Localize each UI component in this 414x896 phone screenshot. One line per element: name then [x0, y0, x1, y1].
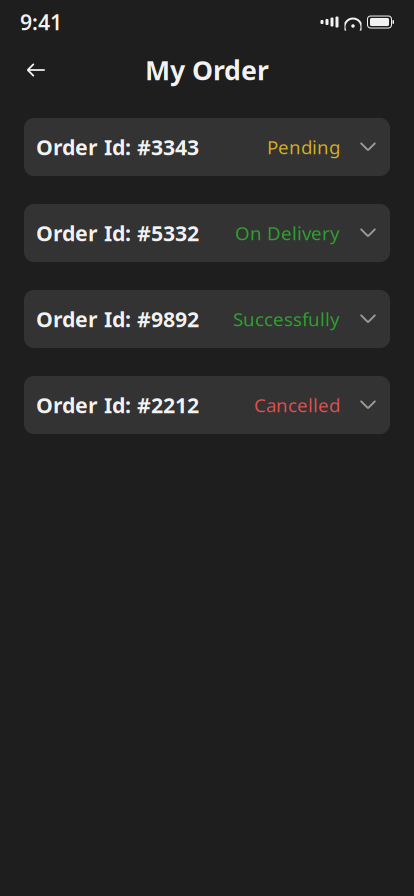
staticText: Order Id: #5332: [36, 219, 199, 247]
staticText: My Order: [145, 52, 269, 88]
staticText: Successfully: [233, 307, 340, 331]
staticText: Order Id: #9892: [36, 305, 199, 333]
button[interactable]: Order Id: #2212: [24, 376, 390, 434]
button[interactable]: Back: [16, 50, 56, 90]
staticText: Order Id: #2212: [36, 391, 199, 419]
staticText: Pending: [267, 135, 340, 159]
staticText: Order Id: #3343: [36, 133, 199, 161]
staticText: Cancelled: [254, 393, 340, 417]
button[interactable]: Order Id: #3343: [24, 118, 390, 176]
button[interactable]: Order Id: #5332: [24, 204, 390, 262]
staticText: On Delivery: [235, 221, 340, 245]
button[interactable]: Order Id: #9892: [24, 290, 390, 348]
staticText: 9:41: [20, 8, 62, 36]
